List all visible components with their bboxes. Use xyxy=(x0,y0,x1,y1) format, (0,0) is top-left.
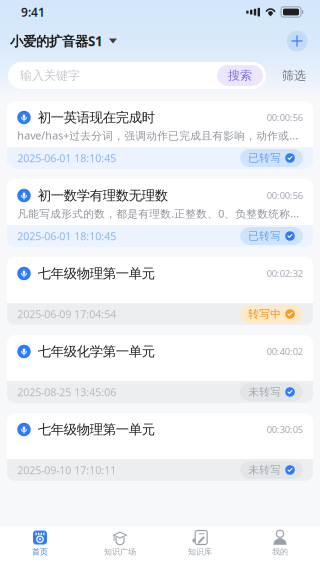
staticText: 七年级化学第一单元 xyxy=(38,343,155,360)
button[interactable]: 小爱的扩音器S1 xyxy=(10,32,117,50)
staticText: 知识库 xyxy=(188,547,212,557)
staticText: 2025-09-10 17:10:11 xyxy=(17,463,116,477)
staticText: 凡能写成形式的数，都是有理数.正整数、0、负整数统称整... xyxy=(17,206,303,221)
staticText: 2025-06-01 18:10:45 xyxy=(17,229,116,243)
button[interactable]: 知识广场 xyxy=(80,529,160,557)
staticText: 2025-06-09 17:04:54 xyxy=(17,307,116,321)
staticText: 00:00:56 xyxy=(267,111,303,124)
staticText: 2025-08-25 13:45:06 xyxy=(17,385,116,399)
staticText: 未转写 xyxy=(248,463,281,476)
staticText: 2025-06-01 18:10:45 xyxy=(17,151,116,165)
staticText: 筛选 xyxy=(282,68,306,83)
button[interactable]: 知识库 xyxy=(160,529,240,557)
staticText: 已转写 xyxy=(248,229,281,242)
staticText: 00:40:02 xyxy=(267,345,303,358)
staticText: 七年级物理第一单元 xyxy=(38,265,155,282)
staticText: 小爱的扩音器S1 xyxy=(10,32,103,50)
staticText: 七年级物理第一单元 xyxy=(38,421,155,438)
button[interactable]: Add xyxy=(284,28,310,54)
staticText: 未转写 xyxy=(248,385,281,398)
button[interactable]: 七年级物理第一单元 xyxy=(7,413,313,481)
button[interactable]: 初一数学有理数无理数 xyxy=(7,179,313,247)
staticText: have/has+过去分词，强调动作已完成且有影响，动作或状... xyxy=(17,128,303,143)
staticText: 9:41 xyxy=(21,4,45,20)
button[interactable]: 初一英语现在完成时 xyxy=(7,101,313,169)
button[interactable]: 七年级化学第一单元 xyxy=(7,335,313,403)
button[interactable]: 七年级物理第一单元 xyxy=(7,257,313,325)
staticText: 00:02:32 xyxy=(267,267,303,280)
staticText: 知识广场 xyxy=(104,547,136,557)
staticText: 输入关键字 xyxy=(20,68,80,83)
staticText: 首页 xyxy=(32,547,48,557)
button[interactable]: 搜索 xyxy=(217,65,263,86)
button[interactable]: 筛选 xyxy=(274,62,314,89)
staticText: 00:30:05 xyxy=(267,423,303,436)
staticText: 初一英语现在完成时 xyxy=(38,109,155,126)
staticText: 搜索 xyxy=(228,68,252,83)
staticText: 初一数学有理数无理数 xyxy=(38,187,168,204)
button[interactable]: 首页 xyxy=(0,529,80,557)
staticText: 转写中 xyxy=(248,307,281,320)
staticText: 我的 xyxy=(272,547,288,557)
staticText: 已转写 xyxy=(248,151,281,164)
button[interactable]: 我的 xyxy=(240,529,320,557)
staticText: 00:00:56 xyxy=(267,189,303,202)
